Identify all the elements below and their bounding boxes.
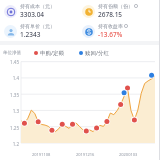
- button[interactable]: 持有单价（元）: [0, 23, 78, 39]
- button[interactable]: 赎回/分红: [78, 48, 111, 58]
- button[interactable]: 申购/定额: [33, 48, 66, 58]
- staticText: -13.67%: [98, 30, 123, 39]
- staticText: 20200103: [119, 152, 138, 157]
- staticText: 持有份额（份）: [98, 3, 133, 9]
- staticText: 1.45: [10, 59, 19, 65]
- staticText: 申购/定额: [40, 49, 65, 57]
- other: 持有单价（元）: [4, 25, 17, 38]
- staticText: 持有收益率: [98, 23, 123, 29]
- staticText: 1.35: [10, 92, 19, 98]
- button[interactable]: 持有份额（份）: [78, 3, 156, 19]
- staticText: 1.3: [12, 108, 19, 114]
- staticText: 3303.04: [20, 10, 45, 19]
- staticText: 2678.15: [98, 10, 123, 19]
- button[interactable]: 1.45: [0, 58, 160, 160]
- staticText: 1.2: [12, 141, 19, 147]
- staticText: 赎回/分红: [85, 49, 110, 57]
- staticText: 1.4: [12, 75, 19, 81]
- staticText: 1.2343: [20, 30, 41, 39]
- other: 持有收益率: [82, 25, 95, 38]
- staticText: 20191108: [32, 152, 51, 157]
- staticText: 1.25: [10, 125, 19, 131]
- staticText: 20191216: [76, 152, 95, 157]
- button[interactable]: 持有成本（元）: [0, 3, 78, 19]
- other: 持有份额（份）: [82, 5, 95, 18]
- button[interactable]: 持有收益率: [78, 23, 156, 39]
- staticText: 持有单价（元）: [20, 23, 55, 29]
- other: 持有成本（元）: [4, 5, 17, 18]
- staticText: 持有成本（元）: [20, 3, 55, 9]
- staticText: 单位净值: [3, 50, 21, 56]
